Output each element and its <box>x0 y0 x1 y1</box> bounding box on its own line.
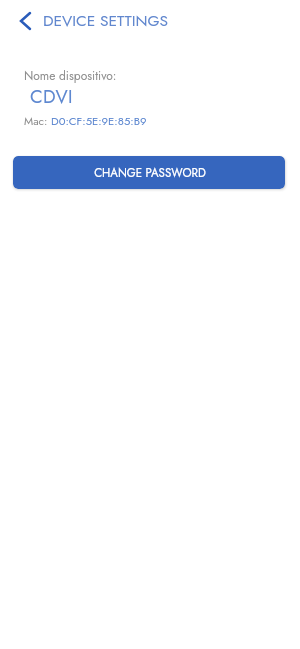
staticText: CHANGE PASSWORD <box>94 165 206 182</box>
button[interactable]: CHANGE PASSWORD <box>13 156 285 189</box>
button[interactable]: Back <box>10 6 40 36</box>
staticText: CDVI <box>30 83 73 110</box>
staticText: D0:CF:5E:9E:85:B9 <box>51 113 147 129</box>
staticText: DEVICE SETTINGS <box>43 9 169 31</box>
staticText: Mac: <box>24 113 51 129</box>
staticText: Nome dispositivo: <box>24 67 117 84</box>
